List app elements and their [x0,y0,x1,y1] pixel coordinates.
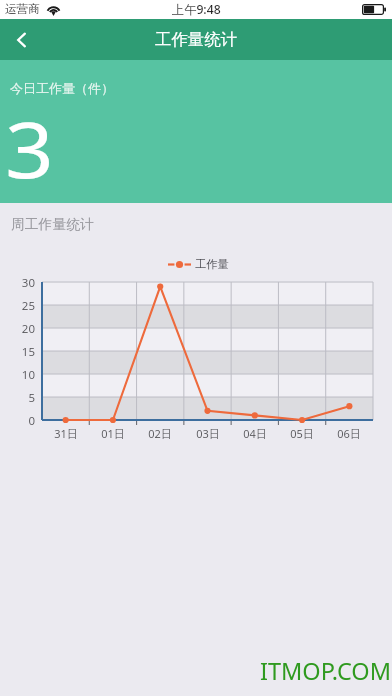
staticText: 01日 [89,426,137,441]
staticText: 31日 [42,426,90,441]
staticText: 今日工作量（件） [10,80,114,96]
staticText: 04日 [231,426,279,441]
staticText: ITMOP.COM [260,655,392,687]
staticText: 0 [1,413,35,429]
button[interactable]: Back [0,19,46,60]
staticText: 工作量统计 [155,29,237,50]
staticText: 3 [5,97,54,201]
staticText: 周工作量统计 [11,216,94,233]
staticText: 上午9:48 [172,1,221,18]
staticText: 06日 [325,426,373,441]
staticText: 02日 [136,426,184,441]
staticText: 05日 [278,426,326,441]
staticText: 5 [1,390,35,406]
staticText: 15 [1,344,35,360]
staticText: 03日 [184,426,232,441]
staticText: 10 [1,367,35,383]
staticText: 运营商 [5,2,40,17]
staticText: 20 [1,321,35,337]
staticText: 25 [1,298,35,314]
staticText: 工作量 [195,257,229,271]
staticText: 30 [1,275,35,291]
